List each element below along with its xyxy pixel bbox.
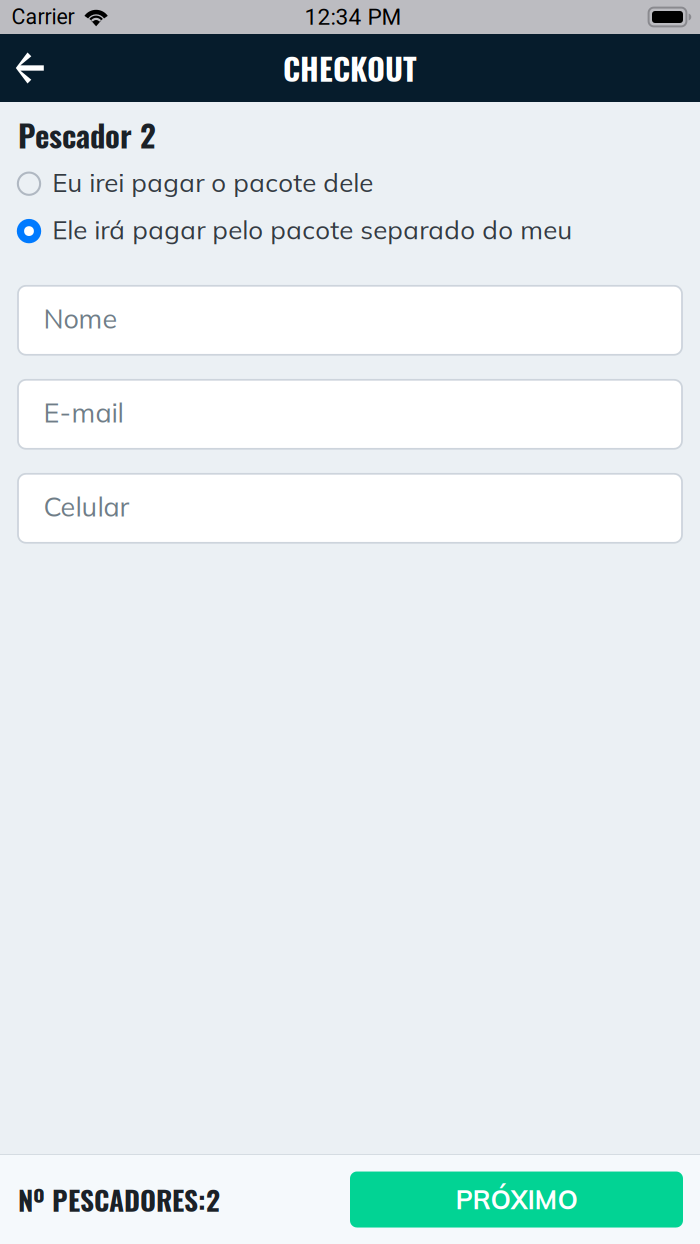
button[interactable]: Ele irá pagar pelo pacote separado do me…	[0, 207, 700, 255]
button[interactable]: E-mail	[18, 380, 682, 449]
staticText: Celular	[43, 489, 129, 523]
button[interactable]: PRÓXIMO	[350, 1171, 683, 1227]
button[interactable]: Back	[0, 34, 66, 102]
staticText: Nome	[43, 301, 117, 335]
button[interactable]: Celular	[18, 474, 682, 543]
staticText: Eu irei pagar o pacote dele	[52, 166, 373, 198]
staticText: CHECKOUT	[283, 45, 417, 91]
staticText: Ele irá pagar pelo pacote separado do me…	[52, 213, 572, 246]
button[interactable]: Eu irei pagar o pacote dele	[0, 160, 700, 207]
staticText: Carrier	[11, 4, 74, 29]
staticText: PRÓXIMO	[455, 1183, 577, 1216]
staticText: E-mail	[43, 395, 123, 429]
staticText: Pescador 2	[18, 112, 156, 157]
staticText: 12:34 PM	[304, 4, 401, 30]
button[interactable]: Nome	[18, 286, 682, 355]
staticText: Nº PESCADORES:2	[18, 1179, 220, 1220]
